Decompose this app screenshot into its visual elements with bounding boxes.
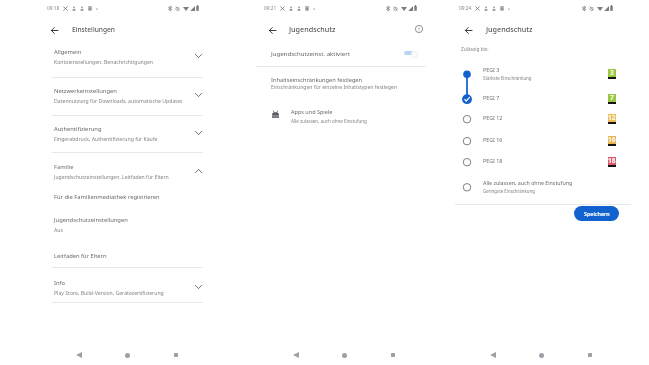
button[interactable]: Leitfaden für Eltern [46, 248, 202, 265]
staticText: 16 [608, 135, 616, 144]
staticText: PEGI 3 [483, 66, 500, 73]
staticText: Für die Familienmediathek registrieren [54, 193, 160, 201]
button[interactable]: PEGI 16 [453, 131, 627, 147]
staticText: Einstellungen [72, 25, 115, 34]
button[interactable]: Help [412, 22, 426, 36]
staticText: PEGI 18 [483, 157, 503, 164]
staticText: 7 [610, 93, 614, 102]
staticText: Jugendschutzeinst. aktiviert [271, 49, 350, 57]
staticText: 12 [608, 113, 616, 122]
button[interactable]: Home [120, 348, 134, 362]
button[interactable]: Info [46, 275, 202, 300]
button[interactable]: Netzwerkeinstellungen [46, 83, 202, 108]
button[interactable]: Back [265, 23, 279, 37]
button[interactable]: PEGI 7 [453, 89, 627, 105]
staticText: Stärkste Einschränkung [483, 75, 532, 81]
button[interactable]: Speichern [574, 206, 619, 221]
staticText: Aus [54, 226, 63, 233]
staticText: Allgemein [54, 48, 82, 56]
button[interactable]: PEGI 12 [453, 109, 627, 125]
button[interactable]: PEGI 18 [453, 152, 627, 168]
staticText: PEGI 16 [483, 136, 503, 143]
staticText: PEGI 7 [483, 94, 500, 101]
button[interactable]: Back [47, 23, 61, 37]
staticText: Datennutzung für Downloads, automatische… [54, 97, 183, 104]
staticText: Jugendschutz [486, 24, 533, 34]
staticText: 09:18 [47, 5, 60, 12]
staticText: Familie [54, 163, 74, 171]
button[interactable]: Home [534, 348, 548, 362]
staticText: Kontoeinstellungen, Benachrichtigungen [54, 58, 153, 65]
staticText: 3 [610, 68, 614, 77]
button[interactable]: Back [72, 348, 86, 362]
staticText: Fingerabdruck, Authentifizierung für Käu… [54, 135, 158, 142]
button[interactable]: Recents [386, 348, 400, 362]
button[interactable]: Recents [583, 348, 597, 362]
staticText: Jugendschutz [289, 24, 336, 34]
button[interactable]: Für die Familienmediathek registrieren [46, 189, 202, 206]
staticText: Jugendschutzeinstellungen, Leitfaden für… [54, 173, 169, 180]
button[interactable]: Back [461, 23, 475, 37]
staticText: Alle zulassen, auch ohne Einstufung [483, 179, 573, 186]
staticText: Jugendschutzeinstellungen [54, 216, 128, 224]
button[interactable]: Alle zulassen, auch ohne Einstufung [453, 174, 627, 194]
button[interactable]: Familie [46, 159, 202, 184]
button[interactable]: Back [486, 348, 500, 362]
staticText: 09:24 [459, 5, 472, 12]
button[interactable]: Jugendschutzeinstellungen [46, 212, 202, 237]
staticText: Geringste Einschränkung [483, 188, 535, 194]
button[interactable]: Authentifizierung [46, 121, 202, 146]
button[interactable]: Recents [169, 348, 183, 362]
button[interactable]: Jugendschutzeinst. aktiviert [262, 46, 422, 62]
staticText: Einschränkungen für einzelne Inhaltstype… [271, 84, 398, 91]
staticText: Leitfaden für Eltern [54, 252, 107, 260]
button[interactable]: Allgemein [46, 44, 202, 69]
staticText: Info [54, 279, 66, 287]
staticText: Authentifizierung [54, 125, 102, 133]
button[interactable]: PEGI 3 [453, 61, 627, 81]
staticText: Netzwerkeinstellungen [54, 87, 117, 95]
staticText: Apps und Spiele [291, 108, 333, 115]
button[interactable]: Home [337, 348, 351, 362]
button[interactable]: Back [289, 348, 303, 362]
button[interactable]: Apps und Spiele [262, 105, 422, 125]
staticText: Inhaltseinschränkungen festlegen [271, 76, 363, 84]
staticText: Zulässig bis: [461, 46, 489, 53]
staticText: Play Store, Build-Version, Gerätezertifi… [54, 289, 164, 296]
staticText: 18 [608, 156, 616, 165]
staticText: 09:21 [264, 5, 277, 12]
staticText: PEGI 12 [483, 114, 503, 121]
staticText: Speichern [584, 210, 610, 217]
staticText: Alle zulassen, auch ohne Einstufung [291, 118, 367, 124]
